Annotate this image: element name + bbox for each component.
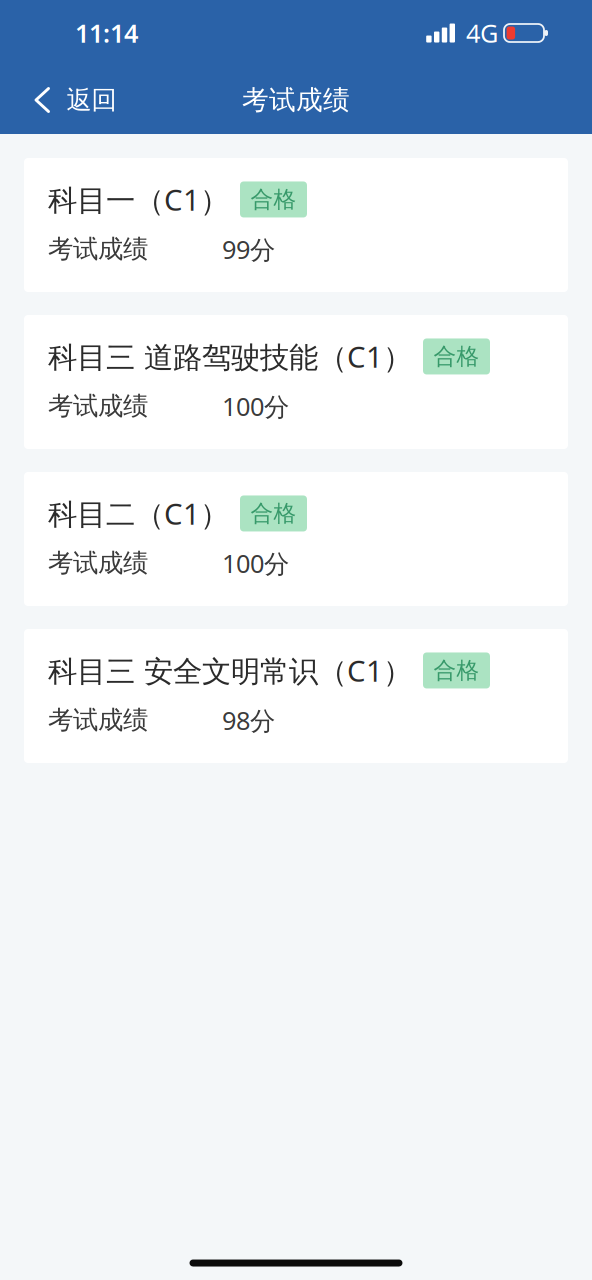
button[interactable]: 科目二（C1） xyxy=(24,472,568,606)
staticText: 100分 xyxy=(222,389,289,423)
staticText: 科目二（C1） xyxy=(48,494,229,533)
staticText: 考试成绩 xyxy=(48,234,148,265)
staticText: 科目一（C1） xyxy=(48,180,229,219)
staticText: 合格 xyxy=(433,343,479,370)
button[interactable]: 科目一（C1） xyxy=(24,158,568,292)
staticText: 考试成绩 xyxy=(48,705,148,736)
staticText: 科目三 安全文明常识（C1） xyxy=(48,651,412,690)
staticText: 99分 xyxy=(222,232,275,266)
staticText: 考试成绩 xyxy=(242,84,350,116)
staticText: 返回 xyxy=(66,84,116,115)
staticText: 合格 xyxy=(250,500,296,527)
staticText: 合格 xyxy=(433,657,479,684)
staticText: 合格 xyxy=(250,186,296,213)
staticText: 98分 xyxy=(222,703,275,737)
button[interactable]: 科目三 安全文明常识（C1） xyxy=(24,629,568,763)
button[interactable]: 返回 xyxy=(0,70,150,129)
staticText: 100分 xyxy=(222,546,289,580)
staticText: 考试成绩 xyxy=(48,391,148,422)
staticText: 4G xyxy=(466,16,498,50)
staticText: 考试成绩 xyxy=(48,548,148,579)
staticText: 科目三 道路驾驶技能（C1） xyxy=(48,337,412,376)
button[interactable]: 科目三 道路驾驶技能（C1） xyxy=(24,315,568,449)
staticText: 11:14 xyxy=(75,16,138,50)
